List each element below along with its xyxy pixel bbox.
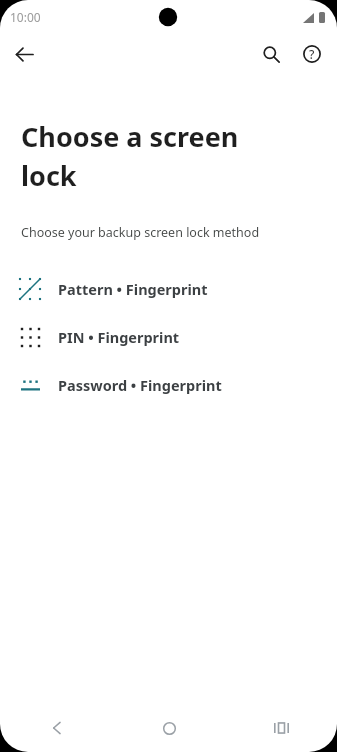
button[interactable]: Home <box>113 704 225 752</box>
button[interactable]: Pattern • Fingerprint <box>0 265 337 313</box>
button[interactable]: PIN • Fingerprint <box>0 313 337 361</box>
button[interactable]: Password • Fingerprint <box>0 361 337 409</box>
button[interactable]: Recent apps <box>225 704 337 752</box>
button[interactable]: Search <box>254 37 288 71</box>
staticText: PIN • Fingerprint <box>58 327 180 347</box>
staticText: Choose your backup screen lock method <box>21 224 321 241</box>
button[interactable]: Back <box>0 704 113 752</box>
staticText: 10:00 <box>10 9 41 25</box>
button[interactable]: Help <box>295 37 329 71</box>
staticText: Password • Fingerprint <box>58 375 222 395</box>
staticText: Pattern • Fingerprint <box>58 279 208 299</box>
staticText: ? <box>309 46 315 62</box>
staticText: Choose a screen lock <box>21 118 277 194</box>
button[interactable]: Back <box>8 38 40 70</box>
